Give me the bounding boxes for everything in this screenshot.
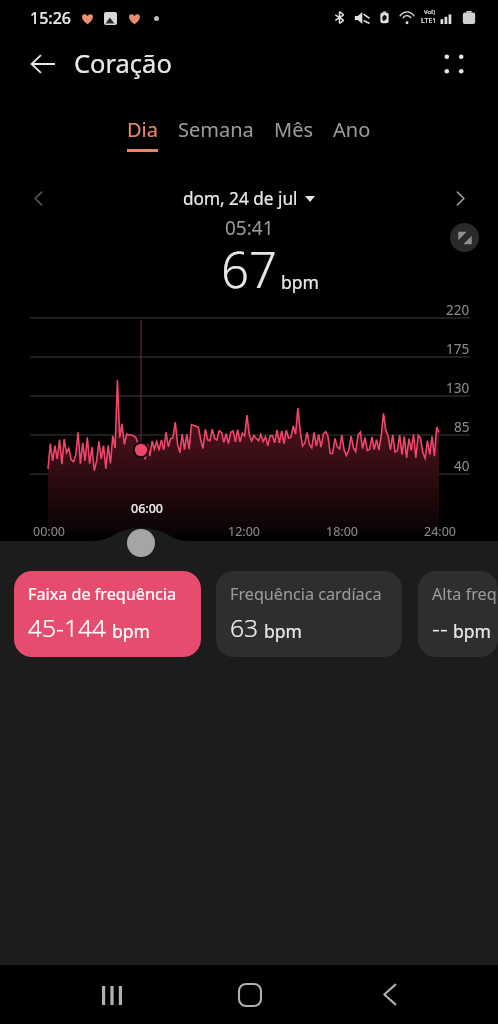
staticText: 45-144 <box>28 611 107 645</box>
staticText: VoI) <box>424 8 435 16</box>
staticText: 130 <box>446 379 470 397</box>
button[interactable]: Back <box>17 38 69 90</box>
staticText: Alta frequência <box>432 583 498 605</box>
staticText: 40 <box>454 457 470 475</box>
button[interactable]: Dia <box>117 116 168 152</box>
staticText: Semana <box>178 116 254 143</box>
staticText: dom, 24 de jul <box>183 187 298 210</box>
staticText: 15:26 <box>30 7 71 29</box>
staticText: 63 <box>230 611 259 645</box>
button[interactable]: More options <box>428 38 480 90</box>
button[interactable]: Expand chart <box>450 223 479 252</box>
staticText: Coração <box>74 46 172 81</box>
staticText: Faixa de frequência <box>28 583 176 605</box>
staticText: 85 <box>454 418 470 436</box>
staticText: 220 <box>446 301 470 319</box>
staticText: bpm <box>281 270 319 294</box>
button[interactable]: Previous day <box>22 182 54 214</box>
staticText: 24:00 <box>424 523 456 540</box>
button[interactable]: Ano <box>323 116 381 152</box>
staticText: 05:41 <box>225 215 274 241</box>
button[interactable]: Faixa de frequência <box>14 571 201 657</box>
button[interactable]: Frequência cardíaca <box>216 571 402 657</box>
button[interactable]: Back <box>356 965 423 1024</box>
staticText: 00:00 <box>33 523 65 540</box>
staticText: 06:00 <box>131 500 164 517</box>
button[interactable]: dom, 24 de jul <box>183 187 315 210</box>
button[interactable]: Alta frequência <box>418 571 498 657</box>
staticText: Ano <box>333 116 371 143</box>
button[interactable]: Recents <box>78 965 145 1024</box>
staticText: 12:00 <box>228 523 260 540</box>
staticText: -- <box>432 611 448 645</box>
staticText: LTE1 <box>421 16 437 26</box>
staticText: 18:00 <box>326 523 358 540</box>
staticText: 67 <box>221 236 277 300</box>
staticText: Dia <box>127 116 158 143</box>
staticText: bpm <box>112 619 150 643</box>
staticText: 175 <box>446 340 470 358</box>
button[interactable]: Semana <box>168 116 264 152</box>
button[interactable]: Mês <box>264 116 323 152</box>
staticText: Frequência cardíaca <box>230 583 382 605</box>
button[interactable]: Next day <box>444 182 476 214</box>
button[interactable]: Home <box>216 965 283 1024</box>
staticText: bpm <box>264 619 302 643</box>
staticText: bpm <box>453 619 491 643</box>
staticText: Mês <box>274 116 313 143</box>
